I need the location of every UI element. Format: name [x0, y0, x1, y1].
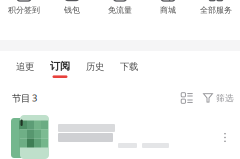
button[interactable]: 免流量	[96, 0, 144, 14]
button[interactable]: 钱包	[48, 0, 96, 14]
button[interactable]: 商城	[144, 0, 192, 14]
button[interactable]: 签	[0, 0, 48, 14]
staticText: 订阅	[50, 60, 70, 72]
staticText: 下载	[120, 61, 138, 72]
staticText: 免流量	[108, 5, 132, 15]
button[interactable]: 历史	[86, 54, 104, 78]
staticText: 筛选	[216, 92, 234, 103]
button[interactable]: 全部服务	[192, 0, 240, 14]
button[interactable]: 追更	[16, 54, 34, 78]
staticText: 钱包	[64, 5, 80, 15]
button[interactable]: 切换视图	[181, 92, 193, 103]
staticText: 追更	[16, 61, 34, 72]
button[interactable]: 下载	[120, 54, 138, 78]
staticText: 商城	[160, 5, 176, 15]
button[interactable]: 订阅	[50, 54, 70, 78]
staticText: 积分签到	[8, 5, 40, 15]
button[interactable]: 筛选	[203, 92, 234, 103]
staticText: 全部服务	[200, 5, 232, 15]
staticText: 节目 3	[12, 92, 37, 104]
staticText: 历史	[86, 61, 104, 72]
button[interactable]: 更多	[220, 132, 230, 143]
